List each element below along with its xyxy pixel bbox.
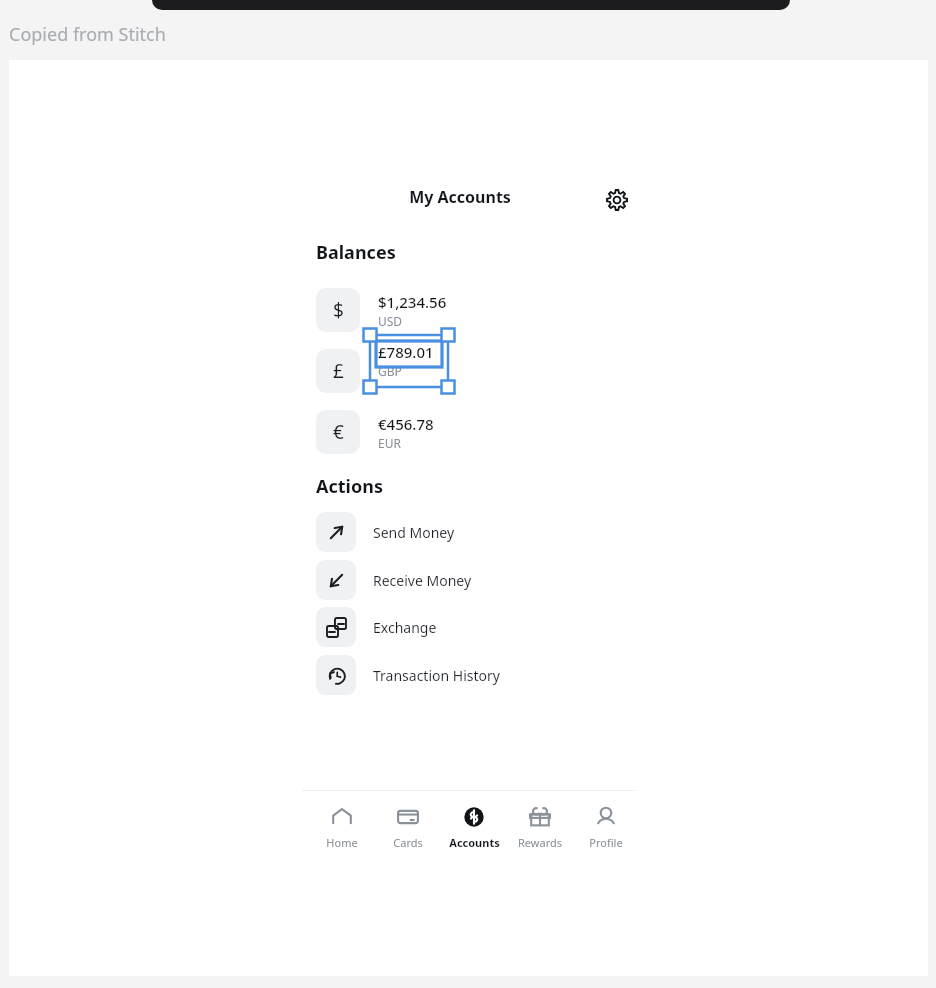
staticText: € [333, 419, 344, 445]
button[interactable]: Transaction History [316, 653, 646, 697]
staticText: Accounts [449, 835, 500, 850]
staticText: £789.01 [378, 342, 434, 362]
staticText: Rewards [518, 835, 562, 850]
button[interactable]: Rewards [512, 800, 568, 850]
button[interactable]: Exchange [316, 605, 646, 649]
button[interactable]: Receive Money [316, 558, 646, 602]
staticText: Home [326, 835, 358, 850]
button[interactable]: Accounts [446, 800, 502, 850]
staticText: €456.78 [378, 414, 434, 434]
button[interactable]: £ [316, 342, 646, 400]
button[interactable]: Profile [578, 800, 634, 850]
staticText: £ [333, 358, 344, 384]
staticText: Exchange [373, 618, 437, 637]
button[interactable]: Settings [595, 183, 639, 217]
staticText: Profile [589, 835, 623, 850]
button[interactable]: Send Money [316, 510, 646, 554]
staticText: Balances [316, 240, 396, 265]
staticText: USD [378, 313, 403, 329]
staticText: Send Money [373, 523, 455, 542]
staticText: EUR [378, 435, 401, 451]
button[interactable]: Cards [380, 800, 436, 850]
staticText: Actions [316, 474, 383, 499]
staticText: $ [333, 297, 344, 323]
staticText: Receive Money [373, 571, 472, 590]
staticText: $1,234.56 [378, 292, 447, 312]
button[interactable]: $ [316, 281, 646, 339]
button[interactable]: € [316, 403, 646, 461]
staticText: Cards [393, 835, 423, 850]
staticText: Transaction History [373, 666, 500, 685]
staticText: Copied from Stitch [9, 22, 166, 47]
staticText: My Accounts [409, 186, 511, 208]
button[interactable]: Home [314, 800, 370, 850]
staticText: GBP [378, 363, 402, 379]
